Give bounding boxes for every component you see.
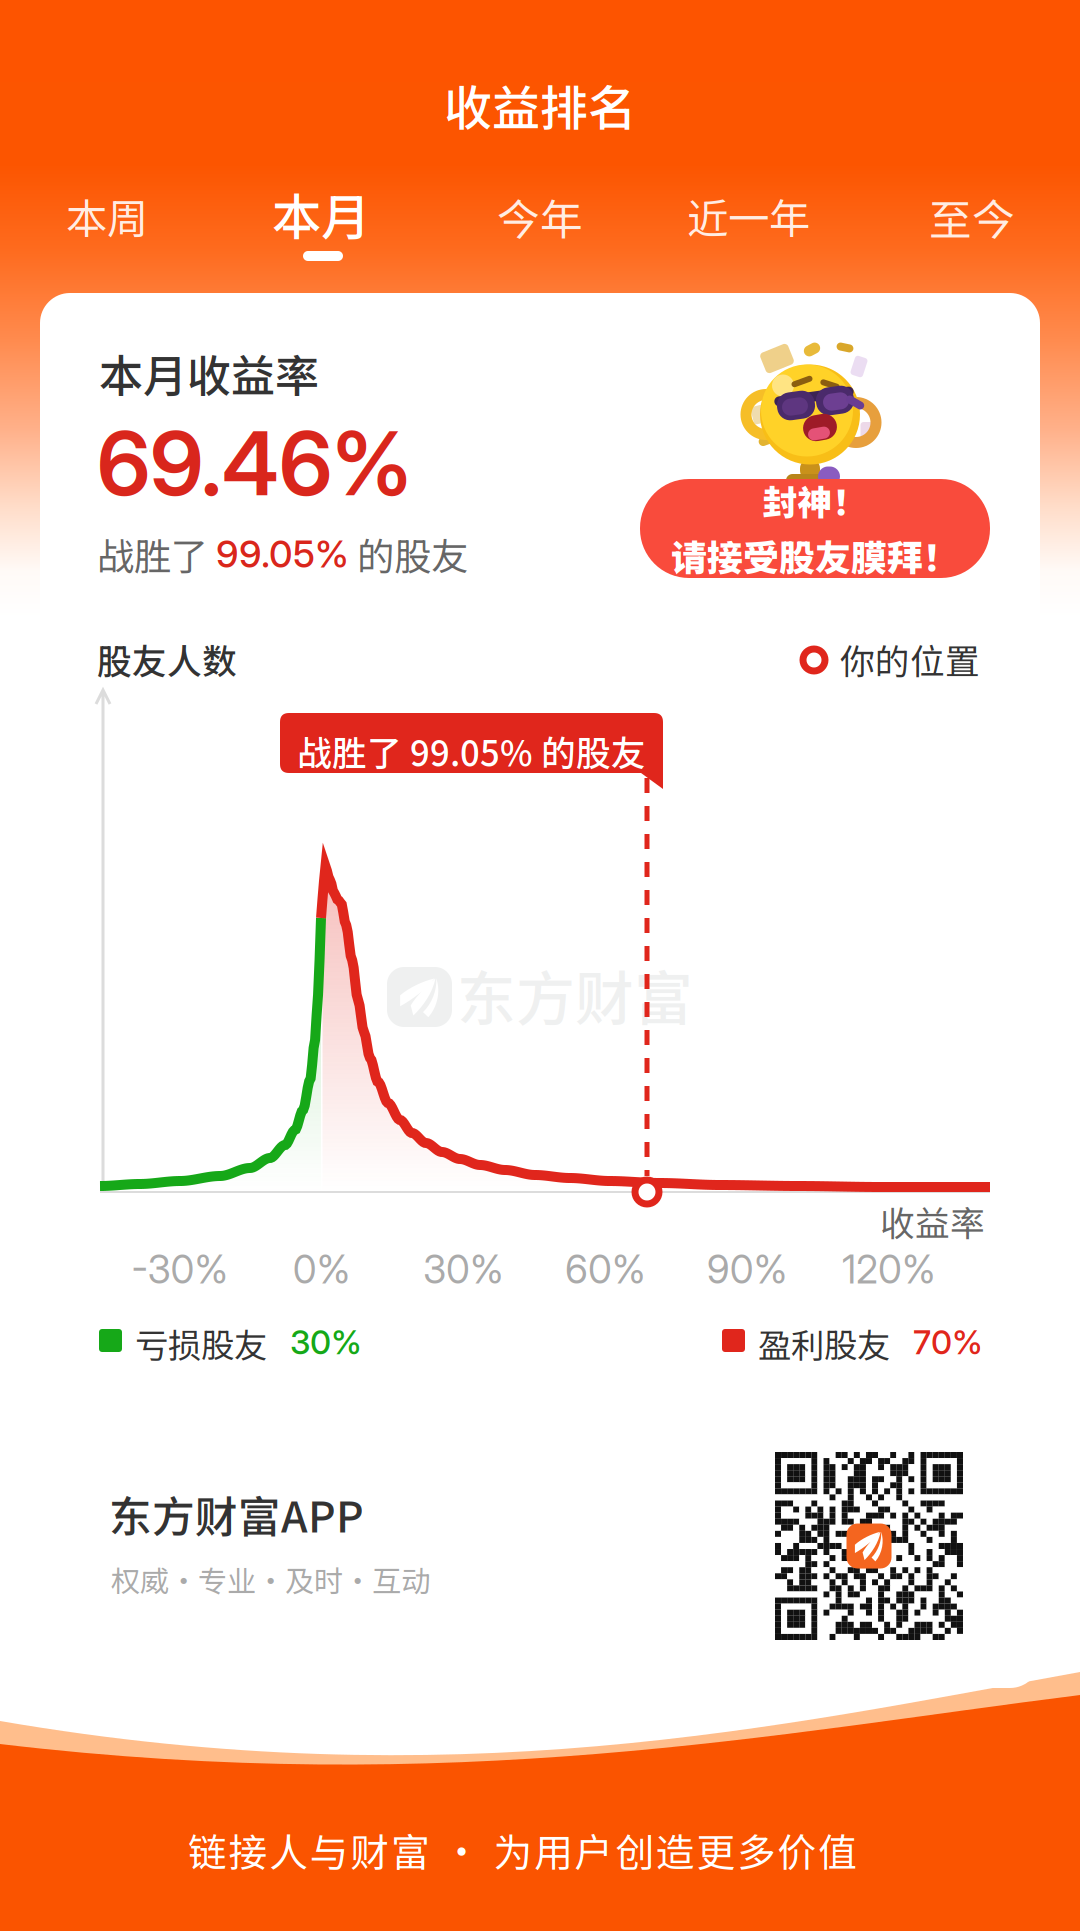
staticText: 近一年 bbox=[687, 186, 810, 246]
staticText: 链接人与财富 · 为用户创造更多价值 bbox=[188, 1822, 857, 1878]
staticText: 60% bbox=[565, 1246, 646, 1293]
button[interactable]: 今年 bbox=[483, 176, 597, 258]
staticText: 本月 bbox=[272, 178, 370, 249]
staticText: 今年 bbox=[497, 186, 583, 248]
staticText: 本月收益率 bbox=[99, 341, 319, 405]
staticText: 盈利股友 bbox=[758, 1319, 890, 1367]
button[interactable]: 收益排名 bbox=[430, 62, 650, 147]
staticText: 你的位置 bbox=[840, 634, 980, 684]
staticText: 30% bbox=[290, 1322, 362, 1362]
staticText: 封神！ bbox=[762, 475, 867, 525]
staticText: 的股友 bbox=[349, 527, 468, 581]
staticText: 120% bbox=[842, 1246, 936, 1293]
staticText: 69.46% bbox=[97, 410, 412, 516]
staticText: 东方财富APP bbox=[109, 1483, 364, 1545]
staticText: 股友人数 bbox=[97, 634, 237, 684]
button[interactable]: 近一年 bbox=[673, 176, 824, 256]
staticText: 东方财富 bbox=[457, 952, 693, 1037]
staticText: 收益排名 bbox=[444, 70, 636, 139]
staticText: 亏损股友 bbox=[135, 1319, 267, 1367]
staticText: 收益率 bbox=[880, 1196, 985, 1246]
staticText: 0% bbox=[293, 1246, 351, 1293]
staticText: 权威·专业·及时·互动 bbox=[111, 1558, 430, 1600]
staticText: -30% bbox=[131, 1246, 228, 1293]
staticText: 战胜了 bbox=[97, 527, 216, 581]
staticText: 至今 bbox=[929, 186, 1015, 248]
staticText: 99.05% bbox=[216, 531, 349, 577]
staticText: 战胜了 99.05% 的股友 bbox=[297, 726, 646, 776]
button[interactable]: 本月 bbox=[258, 168, 384, 259]
staticText: 请接受股友膜拜！ bbox=[671, 529, 959, 582]
staticText: 30% bbox=[423, 1246, 504, 1293]
staticText: 90% bbox=[707, 1246, 788, 1293]
button[interactable]: 至今 bbox=[915, 176, 1029, 258]
button[interactable]: 本周 bbox=[52, 176, 162, 256]
staticText: 本周 bbox=[66, 186, 148, 246]
staticText: 70% bbox=[913, 1322, 983, 1362]
